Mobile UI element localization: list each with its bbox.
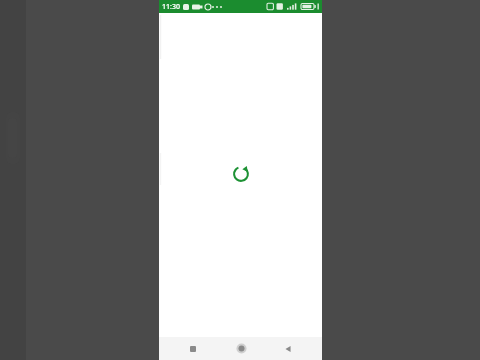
button[interactable]: Home xyxy=(228,337,254,360)
button[interactable]: Reload xyxy=(232,165,250,183)
staticText: 11:30 xyxy=(162,2,180,12)
button[interactable]: Recent apps xyxy=(180,337,206,360)
button[interactable]: Back xyxy=(275,337,301,360)
